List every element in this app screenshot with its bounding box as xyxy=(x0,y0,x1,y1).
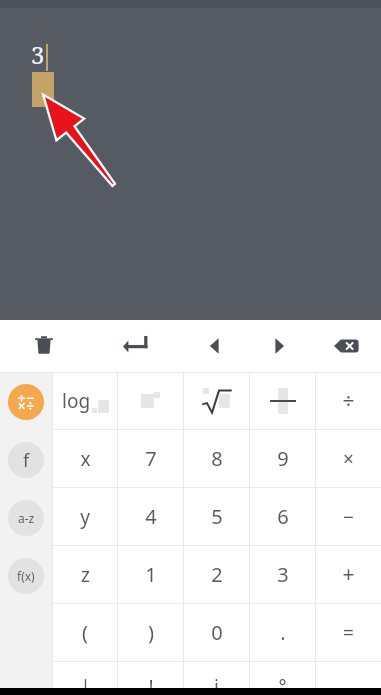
button[interactable]: x xyxy=(53,430,117,487)
staticText: x xyxy=(80,446,91,472)
staticText: 3 xyxy=(277,561,289,588)
staticText: 7 xyxy=(145,445,157,472)
staticText: i xyxy=(214,674,219,695)
staticText: 6 xyxy=(277,503,289,530)
button[interactable]: | xyxy=(53,662,117,688)
button[interactable]: Clear xyxy=(0,320,87,372)
button[interactable]: Enter xyxy=(87,320,183,372)
staticText: × xyxy=(343,446,354,472)
button[interactable]: f xyxy=(0,431,52,489)
staticText: a-z xyxy=(18,510,35,526)
staticText: ÷ xyxy=(342,387,355,416)
staticText: − xyxy=(343,504,354,530)
button[interactable]: 6 xyxy=(250,488,315,545)
staticText: ° xyxy=(278,674,287,695)
button[interactable]: ÷ xyxy=(316,373,381,429)
staticText: . xyxy=(280,619,286,646)
button[interactable] xyxy=(0,373,52,431)
staticText: 0 xyxy=(211,619,223,646)
staticText: ) xyxy=(148,619,154,646)
button[interactable]: 0 xyxy=(184,604,249,661)
button[interactable] xyxy=(118,373,183,429)
button[interactable]: = xyxy=(316,604,381,661)
staticText: y xyxy=(80,504,90,530)
button[interactable]: 5 xyxy=(184,488,249,545)
button[interactable]: z xyxy=(53,546,117,603)
staticText: 1 xyxy=(145,561,157,588)
staticText: ( xyxy=(82,619,88,646)
button[interactable]: + xyxy=(316,546,381,603)
button[interactable]: Backspace xyxy=(311,320,381,372)
button[interactable]: 9 xyxy=(250,430,315,487)
button[interactable]: log xyxy=(53,373,117,429)
staticText: 4 xyxy=(145,503,157,530)
staticText: + xyxy=(342,560,355,589)
button[interactable]: × xyxy=(316,430,381,487)
button[interactable]: a-z xyxy=(0,489,52,547)
button[interactable]: Move right xyxy=(247,320,311,372)
button[interactable]: 3 xyxy=(250,546,315,603)
button[interactable]: Move left xyxy=(183,320,247,372)
button[interactable]: ( xyxy=(53,604,117,661)
button[interactable]: 2 xyxy=(184,546,249,603)
staticText: 3 xyxy=(31,38,45,71)
button[interactable]: i xyxy=(184,662,249,688)
button[interactable] xyxy=(250,373,315,429)
staticText: | xyxy=(80,674,91,695)
staticText: 2 xyxy=(211,561,223,588)
button[interactable]: ) xyxy=(118,604,183,661)
staticText: ! xyxy=(148,674,154,695)
button[interactable]: − xyxy=(316,488,381,545)
staticText: = xyxy=(343,620,354,646)
button[interactable]: ! xyxy=(118,662,183,688)
staticText: 9 xyxy=(277,445,289,472)
staticText: 5 xyxy=(211,503,223,530)
staticText: f xyxy=(23,448,30,473)
staticText: f(x) xyxy=(17,568,35,584)
button[interactable]: 8 xyxy=(184,430,249,487)
button[interactable]: 1 xyxy=(118,546,183,603)
staticText: 8 xyxy=(211,445,223,472)
staticText: log xyxy=(62,388,91,414)
button[interactable]: 4 xyxy=(118,488,183,545)
button[interactable]: . xyxy=(250,604,315,661)
button[interactable] xyxy=(184,373,249,429)
button[interactable]: f(x) xyxy=(0,547,52,605)
button[interactable]: ° xyxy=(250,662,315,688)
button[interactable]: y xyxy=(53,488,117,545)
button[interactable]: 7 xyxy=(118,430,183,487)
staticText: z xyxy=(81,562,90,588)
